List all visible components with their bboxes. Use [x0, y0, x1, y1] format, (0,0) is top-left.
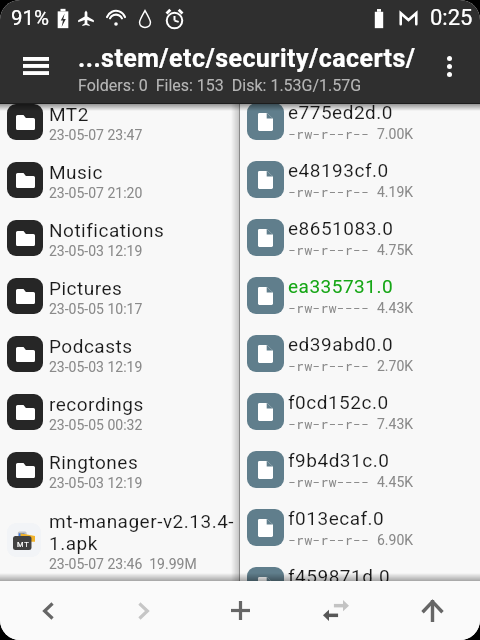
button[interactable]: f9b4d31c.0: [240, 440, 480, 498]
button[interactable]: e775ed2d.0: [240, 103, 480, 150]
staticText: 23-05-03 12:19: [49, 243, 143, 259]
staticText: f013ecaf.0: [288, 507, 385, 529]
staticText: ea335731.0: [288, 275, 394, 297]
button[interactable]: Up: [384, 581, 480, 640]
button[interactable]: Ringtones: [0, 441, 239, 499]
staticText: ...stem/etc/security/cacerts/: [78, 44, 416, 73]
button[interactable]: f459871d.0: [240, 556, 480, 581]
staticText: Podcasts: [49, 335, 133, 357]
staticText: 23-05-07 21:20: [49, 185, 143, 201]
button[interactable]: ...stem/etc/security/cacerts/: [78, 44, 416, 95]
staticText: -rw-r--r--: [288, 241, 370, 259]
button[interactable]: MT: [0, 499, 239, 580]
button[interactable]: Notifications: [0, 209, 239, 267]
staticText: e775ed2d.0: [288, 103, 393, 123]
button[interactable]: ed39abd0.0: [240, 324, 480, 382]
staticText: 23-05-03 12:19: [49, 359, 143, 375]
button[interactable]: Music: [0, 151, 239, 209]
button[interactable]: f0cd152c.0: [240, 382, 480, 440]
staticText: mt-manager-v2.13.4-: [49, 510, 235, 532]
staticText: 6.90K: [377, 532, 414, 548]
staticText: -rw-r--r--: [288, 415, 370, 433]
staticText: 4.19K: [377, 184, 414, 200]
staticText: 23-05-07 23:47: [49, 127, 143, 143]
staticText: 4.45K: [377, 474, 414, 490]
staticText: MT2: [49, 103, 89, 125]
staticText: 7.00K: [377, 126, 414, 142]
staticText: Music: [49, 161, 103, 183]
staticText: -rw-r--r--: [288, 357, 370, 375]
button[interactable]: recordings: [0, 383, 239, 441]
button[interactable]: MT2: [0, 103, 239, 151]
button[interactable]: More options: [426, 43, 472, 89]
staticText: Folders: 0 Files: 153 Disk: 1.53G/1.57G: [78, 76, 362, 95]
button[interactable]: Switch panel: [288, 581, 384, 640]
staticText: 23-05-07 23:46 19.99M: [49, 556, 197, 572]
staticText: -rw-r--r--: [288, 183, 370, 201]
staticText: -rw-r--r--: [288, 531, 370, 549]
staticText: 23-05-05 00:32: [49, 417, 143, 433]
button[interactable]: Forward: [96, 581, 192, 640]
button[interactable]: Menu: [10, 40, 62, 92]
button[interactable]: e8651083.0: [240, 208, 480, 266]
staticText: Ringtones: [49, 451, 139, 473]
staticText: 1.apk: [49, 532, 98, 554]
staticText: f9b4d31c.0: [288, 449, 390, 471]
staticText: e48193cf.0: [288, 159, 389, 181]
button[interactable]: Podcasts: [0, 325, 239, 383]
staticText: ed39abd0.0: [288, 333, 394, 355]
staticText: 7.43K: [377, 416, 414, 432]
staticText: -rw-rw----: [288, 299, 370, 317]
staticText: recordings: [49, 393, 144, 415]
staticText: 2.70K: [377, 358, 414, 374]
staticText: -rw-r--r--: [288, 125, 370, 143]
staticText: 4.43K: [377, 300, 414, 316]
staticText: 0:25: [430, 5, 473, 31]
staticText: MT: [17, 540, 30, 549]
button[interactable]: New: [192, 581, 288, 640]
staticText: 91%: [11, 6, 50, 30]
button[interactable]: e48193cf.0: [240, 150, 480, 208]
button[interactable]: f013ecaf.0: [240, 498, 480, 556]
staticText: f459871d.0: [288, 565, 391, 581]
button[interactable]: Back: [0, 581, 96, 640]
button[interactable]: Pictures: [0, 267, 239, 325]
staticText: 23-05-05 10:17: [49, 301, 143, 317]
staticText: 4.75K: [377, 242, 414, 258]
staticText: Notifications: [49, 219, 165, 241]
staticText: -rw-rw----: [288, 473, 370, 491]
button[interactable]: ea335731.0: [240, 266, 480, 324]
staticText: Pictures: [49, 277, 123, 299]
staticText: 23-05-03 12:19: [49, 475, 143, 491]
staticText: e8651083.0: [288, 217, 394, 239]
staticText: f0cd152c.0: [288, 391, 389, 413]
